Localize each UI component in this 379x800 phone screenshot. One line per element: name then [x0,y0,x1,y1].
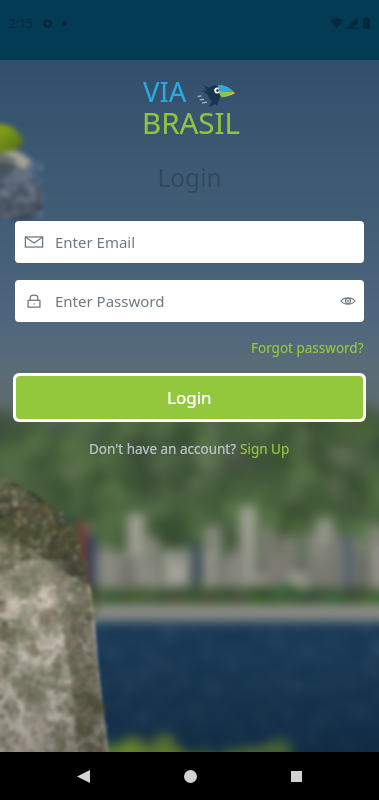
button[interactable]: Enter Password [15,280,364,322]
staticText: Enter Password [55,291,165,311]
button[interactable]: Sign Up [240,440,290,458]
button[interactable]: Show password [338,291,358,311]
staticText: Forgot password? [251,339,364,357]
button[interactable]: Login [16,376,363,419]
button[interactable]: Back [59,752,107,800]
button[interactable]: Enter Email [15,221,364,263]
staticText: Sign Up [240,440,290,458]
staticText: 2:15 [9,15,33,31]
button[interactable]: Home [166,752,214,800]
staticText: Don't have an account? [89,440,240,458]
button[interactable]: Recent apps [272,752,320,800]
staticText: Login [167,386,212,409]
staticText: Login [0,161,379,194]
staticText: BRASIL [142,102,241,142]
button[interactable]: Forgot password? [251,337,379,359]
staticText: VIA [143,73,187,110]
staticText: Enter Email [55,232,136,252]
